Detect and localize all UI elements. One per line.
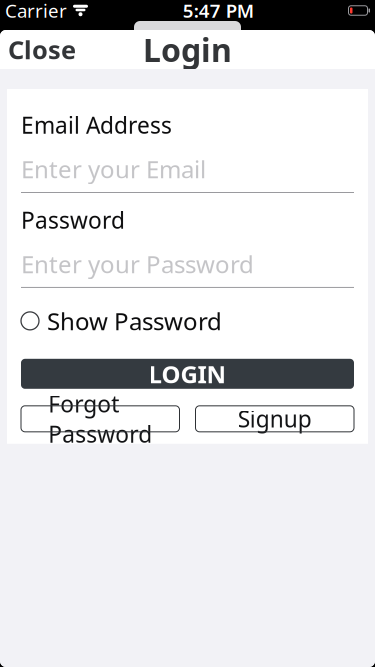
staticText: Email Address — [21, 110, 172, 140]
button[interactable]: LOGIN — [21, 359, 354, 389]
staticText: Close — [8, 33, 76, 66]
button[interactable]: Show Password — [21, 305, 354, 337]
staticText: Password — [21, 205, 125, 235]
button[interactable]: Signup — [195, 406, 354, 432]
staticText: Show Password — [47, 305, 222, 337]
staticText: Carrier — [5, 0, 67, 23]
staticText: Signup — [238, 404, 312, 434]
staticText: 5:47 PM — [183, 0, 254, 23]
staticText: Enter your Email — [21, 153, 206, 185]
button[interactable]: Forgot Password — [21, 406, 179, 432]
staticText: Forgot Password — [48, 389, 152, 449]
staticText: Login — [143, 28, 232, 71]
staticText: LOGIN — [148, 358, 226, 390]
button[interactable]: Close — [0, 25, 84, 74]
staticText: Enter your Password — [21, 248, 254, 280]
